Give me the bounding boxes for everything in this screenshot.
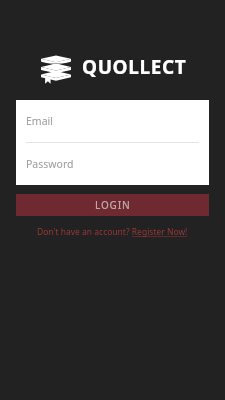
button[interactable]: Don't have an account? Register Now! xyxy=(0,226,225,238)
staticText: QUOLLECT xyxy=(82,54,187,80)
staticText: Email xyxy=(26,114,53,128)
staticText: Password xyxy=(26,157,74,171)
button[interactable]: Email xyxy=(16,100,209,142)
other: Quollect logo xyxy=(39,50,73,84)
staticText: LOGIN xyxy=(95,198,131,212)
staticText: Don't have an account? Register Now! xyxy=(37,226,188,238)
button[interactable]: Password xyxy=(16,143,209,185)
button[interactable]: LOGIN xyxy=(16,194,209,216)
